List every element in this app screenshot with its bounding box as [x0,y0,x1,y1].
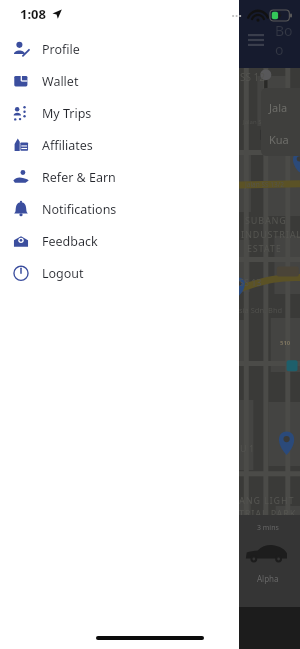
staticText: Feedback [42,233,98,250]
staticText: SS 13 [239,276,262,288]
staticText: Jalan SS 12/2 [243,118,279,126]
button[interactable]: Feedback [0,225,239,257]
staticText: SS 12 [240,70,266,84]
staticText: TRIAL PARK [239,507,297,519]
staticText: Wallet [42,73,79,90]
button[interactable]: Profile [0,33,239,65]
staticText: SUBANG [245,214,287,226]
staticText: Logout [42,265,84,282]
staticText: Affiliates [42,137,93,154]
staticText: U 1 [240,442,255,454]
staticText: ESTATE [247,242,282,254]
staticText: Notifications [42,201,117,218]
staticText: Refer & Earn [42,169,116,186]
staticText: ANG LIGHT [239,494,295,506]
staticText: My Trips [42,105,92,122]
staticText: Jalan SS 13/2 [245,180,284,189]
button[interactable]: Refer & Earn [0,161,239,193]
button[interactable]: Notifications [0,193,239,225]
staticText: sia Sdn. Bhd [239,305,283,315]
staticText: INDUSTRIAL [241,228,300,240]
button[interactable]: Affiliates [0,129,239,161]
staticText: 510 [280,339,291,347]
button[interactable]: Jala [261,88,300,156]
staticText: Alpha [257,573,279,584]
button[interactable]: My Trips [0,97,239,129]
button[interactable]: Wallet [0,65,239,97]
staticText: Boo [275,21,300,59]
button[interactable]: Open menu [245,29,267,51]
staticText: 3 mins [257,523,279,533]
staticText: 1:08 [20,5,46,23]
staticText: Profile [42,41,80,58]
staticText: Jala [269,100,288,115]
button[interactable]: Logout [0,257,239,289]
staticText: Kua [269,132,289,147]
